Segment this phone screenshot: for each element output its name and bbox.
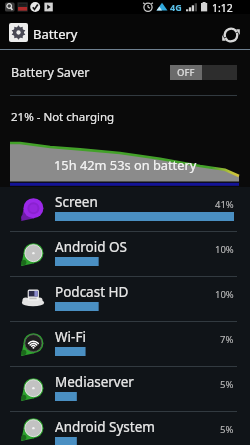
button[interactable]: Podcast HD — [0, 277, 250, 321]
staticText: 7% — [220, 333, 234, 346]
staticText: 10% — [215, 288, 234, 301]
button[interactable]: Mediaserver — [0, 367, 250, 411]
staticText: Wi-Fi — [55, 328, 86, 346]
button[interactable]: Refresh — [212, 14, 250, 49]
staticText: OFF — [177, 66, 195, 79]
staticText: Battery — [33, 25, 78, 43]
button[interactable]: Battery Saver — [0, 50, 250, 95]
button[interactable]: Android OS — [0, 232, 250, 276]
staticText: 21% - Not charging — [11, 109, 115, 125]
staticText: 1:12 — [212, 1, 233, 15]
staticText: 5% — [220, 378, 234, 391]
button[interactable]: Battery — [0, 22, 212, 41]
button[interactable]: Screen — [0, 187, 250, 231]
staticText: 5% — [220, 423, 234, 436]
button[interactable]: Wi-Fi — [0, 322, 250, 366]
staticText: 4G — [170, 1, 182, 13]
staticText: Podcast HD — [55, 283, 129, 301]
staticText: 15h 42m 53s on battery — [54, 156, 197, 173]
staticText: 41% — [215, 198, 234, 211]
button[interactable]: OFF — [170, 65, 237, 80]
staticText: Android System — [55, 418, 155, 436]
staticText: 10% — [215, 243, 234, 256]
staticText: Mediaserver — [55, 373, 134, 391]
staticText: Android OS — [55, 238, 127, 256]
staticText: Screen — [55, 193, 98, 211]
button[interactable]: Android System — [0, 412, 250, 445]
staticText: Battery Saver — [11, 64, 90, 81]
